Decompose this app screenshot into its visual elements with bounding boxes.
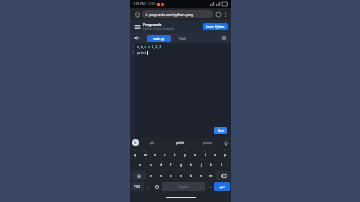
button[interactable]: v: [176, 171, 186, 180]
staticText: n: [200, 173, 203, 178]
button[interactable]: pri: [139, 137, 166, 148]
staticText: j: [201, 162, 202, 167]
staticText: print: [137, 51, 147, 55]
button[interactable]: print: [166, 137, 194, 148]
staticText: q: [134, 152, 137, 157]
staticText: u: [194, 152, 197, 157]
staticText: c: [170, 173, 172, 178]
button[interactable]: Settings: [220, 34, 228, 42]
button[interactable]: b: [186, 171, 196, 180]
staticText: m: [209, 173, 213, 178]
staticText: s: [150, 162, 152, 167]
button[interactable]: Backspace: [216, 171, 230, 180]
button[interactable]: Learn Python: [203, 23, 228, 30]
staticText: 1: [135, 149, 137, 152]
staticText: print: [176, 140, 184, 145]
staticText: w: [144, 152, 147, 157]
button[interactable]: Enter: [214, 182, 230, 191]
staticText: a,b,c = 1,2,3: [137, 45, 162, 49]
button[interactable]: Expand: [222, 139, 229, 146]
button[interactable]: Shift: [131, 171, 146, 180]
staticText: Shell: [179, 37, 186, 41]
button[interactable]: d: [156, 160, 166, 169]
button[interactable]: 0: [220, 149, 230, 158]
button[interactable]: n: [196, 171, 206, 180]
button[interactable]: c: [166, 171, 176, 180]
button[interactable]: Home: [133, 10, 141, 18]
button[interactable]: Emoji: [152, 182, 161, 191]
staticText: o: [214, 152, 217, 157]
staticText: i: [205, 152, 206, 157]
staticText: d: [160, 162, 163, 167]
staticText: e: [154, 152, 157, 157]
button[interactable]: h: [186, 160, 196, 169]
button[interactable]: Google: [132, 139, 139, 146]
button[interactable]: Shell: [174, 35, 190, 42]
button[interactable]: 7: [190, 149, 200, 158]
button[interactable]: More options: [222, 11, 228, 17]
button[interactable]: l: [216, 160, 226, 169]
button[interactable]: 1: [131, 149, 140, 158]
button[interactable]: 2: [140, 149, 150, 158]
button[interactable]: 8: [200, 149, 210, 158]
staticText: 9: [214, 149, 216, 152]
staticText: z: [150, 173, 152, 178]
staticText: k: [210, 162, 212, 167]
button[interactable]: 9: [210, 149, 220, 158]
staticText: ,: [148, 185, 149, 189]
staticText: 0: [224, 149, 226, 152]
button[interactable]: ?123: [131, 182, 144, 191]
staticText: 1: [132, 45, 134, 49]
button[interactable]: a: [135, 160, 146, 169]
button[interactable]: s: [146, 160, 156, 169]
staticText: b: [190, 173, 193, 178]
button[interactable]: Menu: [133, 23, 141, 31]
staticText: prince: [203, 141, 213, 145]
staticText: v: [180, 173, 182, 178]
button[interactable]: Period: [206, 182, 214, 191]
button[interactable]: k: [206, 160, 216, 169]
staticText: 4: [164, 149, 166, 152]
staticText: programiz.com/python-prog: [149, 12, 194, 16]
button[interactable]: g: [176, 160, 186, 169]
staticText: Learn Python: [206, 25, 225, 29]
button[interactable]: f: [166, 160, 176, 169]
staticText: main.py: [153, 37, 165, 41]
button[interactable]: prince: [194, 137, 222, 148]
button[interactable]: programiz.com/python-prog: [142, 10, 213, 18]
staticText: g: [180, 162, 183, 167]
staticText: English: [179, 185, 189, 189]
button[interactable]: Back: [133, 34, 141, 42]
staticText: 7: [194, 149, 196, 152]
staticText: Programiz: [143, 22, 162, 27]
button[interactable]: 5: [170, 149, 180, 158]
staticText: x: [160, 173, 162, 178]
staticText: f: [170, 162, 172, 167]
button[interactable]: z: [146, 171, 156, 180]
staticText: 1.5KB/s: [146, 2, 156, 6]
staticText: t: [174, 152, 176, 157]
button[interactable]: Comma: [144, 182, 152, 191]
button[interactable]: j: [196, 160, 206, 169]
button[interactable]: 3: [150, 149, 160, 158]
button[interactable]: x: [156, 171, 166, 180]
button[interactable]: 4: [160, 149, 170, 158]
staticText: a: [139, 162, 142, 167]
staticText: ?123: [134, 185, 141, 189]
button[interactable]: main.py: [147, 35, 171, 42]
button[interactable]: m: [206, 171, 216, 180]
staticText: G: [134, 141, 137, 145]
staticText: 8: [204, 149, 206, 152]
staticText: 6: [184, 149, 186, 152]
staticText: h: [190, 162, 193, 167]
staticText: l: [221, 162, 222, 167]
button[interactable]: Page info: [215, 11, 222, 18]
staticText: p: [224, 152, 227, 157]
staticText: 5: [174, 149, 176, 152]
staticText: .: [210, 185, 211, 189]
staticText: Python Online Compiler: [143, 27, 175, 31]
button[interactable]: Run: [214, 127, 227, 134]
button[interactable]: 6: [180, 149, 190, 158]
staticText: 7:29 PM: [133, 2, 145, 6]
button[interactable]: English: [162, 182, 205, 191]
